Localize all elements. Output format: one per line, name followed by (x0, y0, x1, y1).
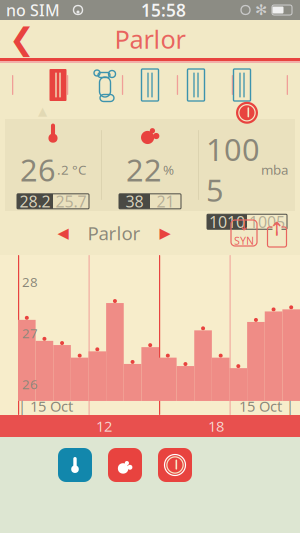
button[interactable]: Temperature (56, 446, 94, 484)
staticText: ↑ (269, 218, 285, 240)
button[interactable]: Share (260, 217, 294, 249)
button[interactable]: Room 2 (81, 64, 127, 106)
staticText: ↓ (238, 218, 249, 233)
staticText: | 15 Oct (18, 396, 73, 416)
staticText: 26 (20, 149, 56, 190)
staticText: ▶ (159, 225, 170, 241)
staticText: 22 (126, 149, 162, 190)
staticText: no SIM (6, 0, 60, 21)
staticText: 27 (22, 324, 38, 342)
button[interactable]: Next (152, 218, 178, 248)
staticText: 28 (22, 273, 38, 291)
button[interactable]: Sync (228, 217, 260, 249)
button[interactable]: Back (0, 20, 44, 58)
staticText: SYN (234, 233, 254, 248)
staticText: % (163, 161, 174, 178)
staticText: ❮ (9, 22, 35, 56)
staticText: Parlor (114, 22, 185, 56)
staticText: ◀ (57, 225, 68, 241)
staticText: ▲ (38, 104, 47, 118)
staticText: 15 Oct | (239, 396, 294, 416)
staticText: 15:58 (141, 0, 186, 21)
staticText: 28.2 (19, 191, 50, 212)
staticText: 1005 (206, 129, 260, 210)
staticText: .2 °C (57, 161, 86, 178)
staticText: 25.7 (55, 191, 86, 212)
button[interactable]: Pressure (156, 446, 194, 484)
staticText: Parlor (87, 221, 140, 245)
staticText: 38 (125, 191, 143, 212)
button[interactable]: Previous (50, 218, 76, 248)
staticText: 12 (96, 416, 112, 436)
staticText: 21 (156, 191, 174, 212)
staticText: ✻ (255, 2, 267, 18)
button[interactable]: Room 4 (173, 64, 219, 106)
staticText: 26 (22, 375, 38, 393)
button[interactable]: Room 1 (35, 64, 81, 106)
staticText: 18 (208, 416, 224, 436)
button[interactable]: Room 3 (127, 64, 173, 106)
staticText: 1005 (249, 211, 285, 232)
button[interactable]: Humidity (106, 446, 144, 484)
staticText: mba (261, 161, 288, 178)
staticText: 1010 (209, 211, 245, 232)
staticText: ↑ (269, 218, 285, 240)
button[interactable]: Room 5 (219, 64, 265, 106)
